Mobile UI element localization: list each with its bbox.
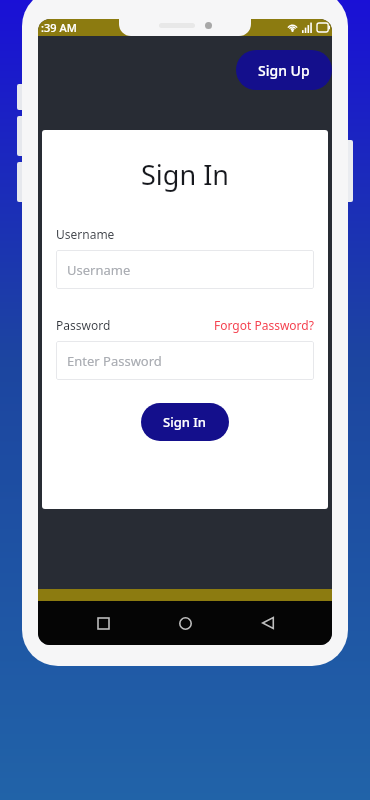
staticText: Username (56, 226, 115, 242)
staticText: Sign In (163, 413, 207, 431)
button[interactable]: Recent apps (85, 605, 121, 641)
staticText: Enter Password (67, 352, 162, 370)
staticText: Forgot Password? (214, 317, 314, 333)
staticText: Sign In (56, 156, 314, 193)
staticText: Sign Up (258, 61, 310, 80)
button[interactable]: Username (56, 250, 314, 289)
staticText: Password (56, 317, 111, 333)
staticText: :39 AM (41, 20, 77, 35)
button[interactable]: Enter Password (56, 341, 314, 380)
button[interactable]: Sign Up (236, 50, 332, 90)
staticText: Username (67, 261, 131, 279)
button[interactable]: Forgot Password? (214, 317, 314, 333)
button[interactable]: Home (167, 605, 203, 641)
button[interactable]: Back (250, 605, 286, 641)
button[interactable]: Sign In (141, 403, 229, 441)
